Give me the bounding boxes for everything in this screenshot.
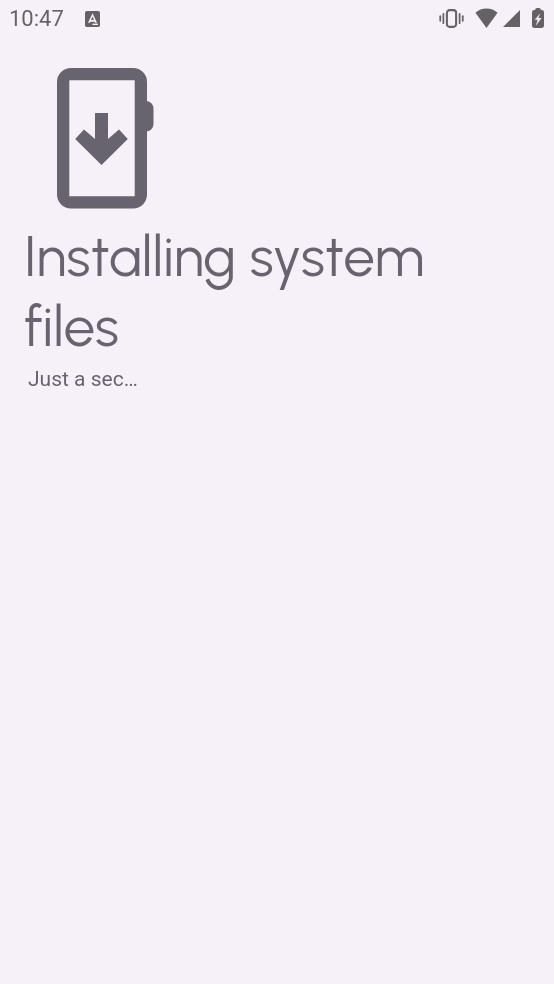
other: Vibrate mode xyxy=(439,9,464,28)
other: Wi-Fi xyxy=(475,9,498,28)
staticText: Just a sec… xyxy=(28,367,138,392)
other: Battery charging xyxy=(532,8,544,28)
other: System update in progress xyxy=(57,68,154,209)
button[interactable]: 10:47 xyxy=(9,6,100,32)
staticText: Installing system files xyxy=(24,223,454,360)
button[interactable]: Vibrate mode xyxy=(439,8,544,28)
other: Notification xyxy=(85,11,100,27)
other: Mobile signal xyxy=(503,10,520,27)
staticText: 10:47 xyxy=(9,6,64,32)
